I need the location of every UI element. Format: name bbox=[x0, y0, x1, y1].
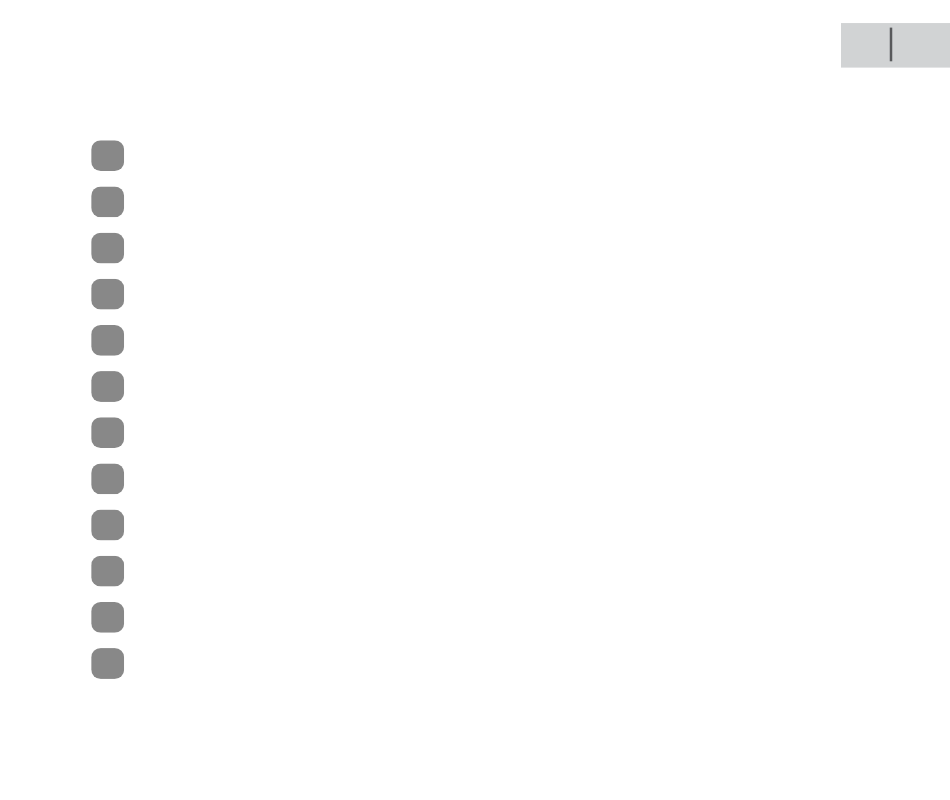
button[interactable]: List item 5 bbox=[91, 325, 124, 356]
button[interactable]: List item 10 bbox=[91, 556, 124, 587]
button[interactable]: List item 8 bbox=[91, 463, 124, 494]
button[interactable]: List item 7 bbox=[91, 417, 124, 448]
button[interactable]: List item 9 bbox=[91, 510, 124, 540]
button[interactable]: List item 11 bbox=[91, 602, 124, 633]
button[interactable]: List item 2 bbox=[91, 186, 124, 217]
button[interactable]: List item 6 bbox=[91, 371, 124, 402]
button[interactable]: List item 4 bbox=[91, 279, 124, 310]
button[interactable]: List item 3 bbox=[91, 233, 124, 263]
button[interactable]: Search text field bbox=[841, 23, 950, 67]
button[interactable]: List item 1 bbox=[91, 140, 124, 171]
button[interactable]: List item 12 bbox=[91, 648, 124, 679]
